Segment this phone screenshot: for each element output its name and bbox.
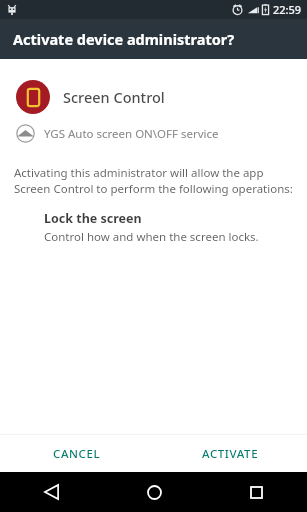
button[interactable]: Back (0, 484, 103, 500)
other: Collapse details (16, 124, 35, 143)
button[interactable]: CANCEL (41, 439, 113, 469)
staticText: YGS Auto screen ON\OFF service (44, 126, 219, 142)
button[interactable]: Collapse details (0, 122, 307, 145)
button[interactable]: Home (103, 485, 205, 500)
staticText: Activating this administrator will allow… (14, 165, 293, 196)
staticText: ACTIVATE (202, 446, 259, 462)
staticText: CANCEL (53, 446, 101, 462)
staticText: Control how and when the screen locks. (44, 229, 259, 245)
staticText: Lock the screen (44, 210, 142, 227)
staticText: 22:59 (273, 2, 302, 17)
button[interactable]: Recent apps (205, 486, 307, 499)
staticText: Activate device administrator? (13, 29, 235, 49)
button[interactable]: ACTIVATE (190, 439, 271, 469)
staticText: Screen Control (63, 87, 165, 107)
